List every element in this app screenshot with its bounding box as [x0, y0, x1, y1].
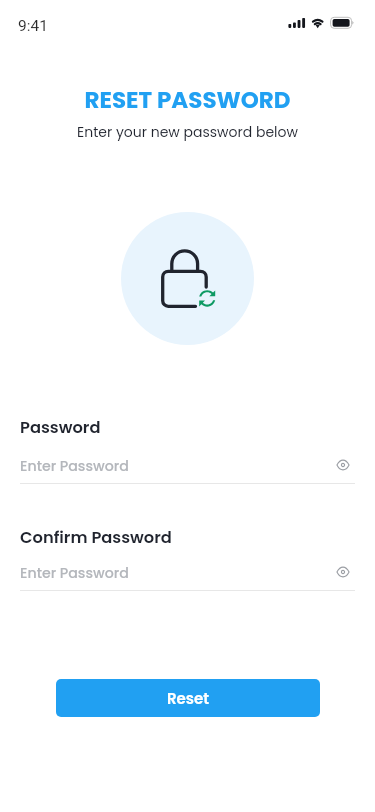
staticText: Enter Password [20, 563, 129, 583]
staticText: Password [20, 416, 101, 439]
button[interactable]: Show password [331, 453, 355, 477]
staticText: Reset [167, 688, 210, 709]
button[interactable]: Show password [331, 560, 355, 584]
staticText: RESET PASSWORD [0, 84, 375, 116]
staticText: 9:41 [18, 17, 48, 35]
staticText: Enter your new password below [0, 122, 375, 142]
button[interactable]: Reset [56, 679, 320, 717]
staticText: Enter Password [20, 456, 129, 476]
staticText: Confirm Password [20, 526, 172, 549]
